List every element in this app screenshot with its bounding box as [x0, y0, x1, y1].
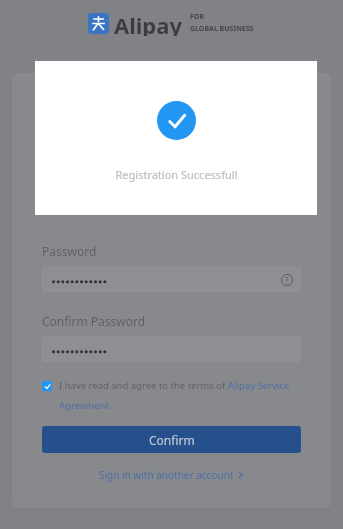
staticText: I have read and agree to the terms of [59, 379, 228, 392]
staticText: FOR [190, 12, 204, 22]
button[interactable] [42, 337, 301, 362]
staticText: Sign in with another account [99, 468, 234, 482]
other: Agree to terms [42, 381, 52, 391]
button[interactable]: Confirm [42, 426, 301, 453]
button[interactable]: Password help [281, 274, 293, 286]
staticText: Alipay Service [228, 379, 290, 392]
button[interactable]: Agree to terms [42, 379, 290, 412]
staticText: Agreement [59, 399, 109, 412]
staticText: Registration Successful! [115, 167, 238, 182]
staticText: ? [285, 275, 289, 286]
staticText: Confirm [149, 432, 195, 448]
button[interactable]: Password help [42, 267, 301, 292]
staticText: Confirm Password [42, 313, 146, 329]
staticText: Alipay [114, 10, 183, 36]
staticText: Password [42, 243, 97, 259]
button[interactable]: Sign in with another account [12, 467, 331, 483]
staticText: GLOBAL BUSINESS [190, 24, 254, 34]
